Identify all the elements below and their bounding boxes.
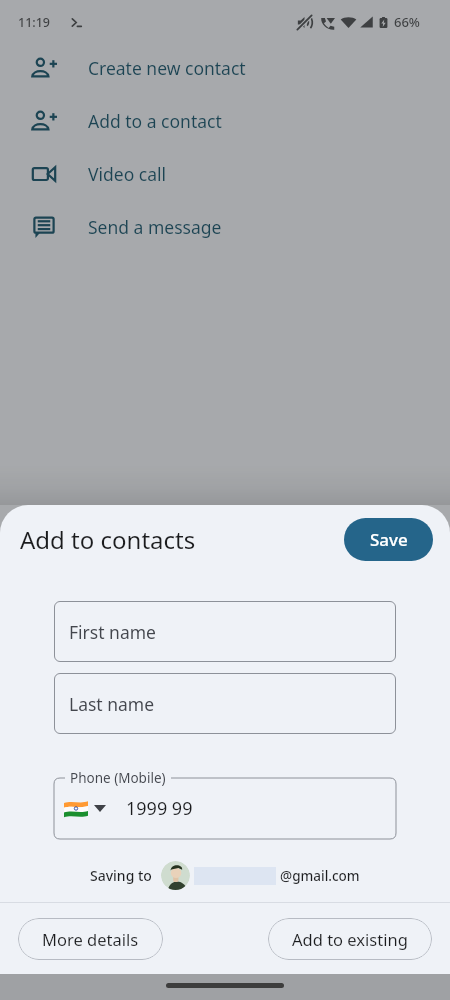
button[interactable]: Last name	[54, 673, 396, 734]
staticText: Add to contacts	[20, 523, 196, 556]
button[interactable]: Create new contact	[0, 41, 450, 94]
staticText: 11:19	[18, 14, 51, 31]
staticText: 66%	[394, 13, 420, 31]
staticText: Add to existing	[292, 928, 408, 950]
staticText: First name	[69, 620, 156, 644]
button[interactable]: More details	[18, 918, 163, 960]
staticText: Send a message	[88, 215, 222, 239]
button[interactable]: First name	[54, 601, 396, 662]
staticText: Saving to	[90, 866, 152, 885]
staticText: More details	[42, 928, 139, 950]
button[interactable]: Save	[344, 518, 433, 561]
staticText: Video call	[88, 162, 167, 186]
staticText: Add to a contact	[88, 109, 222, 133]
staticText: 1999 99	[126, 796, 193, 821]
button[interactable]: Select country code	[58, 794, 112, 823]
button[interactable]: Select country code	[54, 778, 396, 839]
staticText: Save	[370, 528, 408, 551]
button[interactable]: Add to existing	[268, 918, 432, 960]
button[interactable]: Send a message	[0, 200, 450, 253]
staticText: @gmail.com	[280, 867, 360, 885]
button[interactable]: Add to a contact	[0, 94, 450, 147]
button[interactable]: Video call	[0, 147, 450, 200]
staticText: Create new contact	[88, 56, 246, 80]
staticText: Last name	[69, 692, 155, 716]
staticText: Phone (Mobile)	[70, 769, 166, 787]
